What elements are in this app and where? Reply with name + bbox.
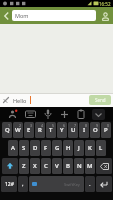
staticText: A [11, 144, 15, 152]
staticText: N [77, 162, 82, 170]
staticText: 9 [96, 123, 99, 128]
staticText: C [44, 162, 48, 170]
button[interactable]: S [19, 140, 29, 156]
button[interactable]: V [52, 158, 62, 174]
button[interactable]: X [30, 158, 40, 174]
staticText: Hello [13, 97, 27, 104]
button[interactable]: A [8, 140, 18, 156]
staticText: 0 [107, 123, 110, 128]
staticText: 16:52 [99, 1, 111, 7]
button[interactable] [2, 9, 11, 22]
button[interactable]: O [90, 122, 100, 138]
staticText: I [83, 126, 86, 134]
button[interactable]: N [74, 158, 84, 174]
button[interactable] [2, 96, 10, 104]
button[interactable]: G [52, 140, 62, 156]
staticText: 6 [63, 123, 66, 128]
staticText: T [49, 126, 53, 134]
staticText: 8 [85, 123, 88, 128]
button[interactable]: J [74, 140, 84, 156]
staticText: P [104, 126, 108, 134]
button[interactable]: K [85, 140, 95, 156]
staticText: D [33, 144, 38, 152]
staticText: S [22, 144, 26, 152]
button[interactable] [25, 109, 36, 119]
button[interactable]: SwiftKey [29, 176, 84, 192]
button[interactable] [99, 10, 111, 22]
button[interactable]: Mom [12, 10, 96, 21]
staticText: R [38, 126, 42, 134]
button[interactable]: M [85, 158, 95, 174]
staticText: Z [22, 162, 26, 170]
button[interactable]: U [68, 122, 78, 138]
button[interactable]: E [24, 122, 34, 138]
staticText: 1 [8, 123, 11, 128]
button[interactable]: Z [19, 158, 29, 174]
button[interactable]: , [18, 176, 28, 192]
staticText: Mom [15, 12, 29, 19]
button[interactable]: Q [2, 122, 12, 138]
button[interactable]: L [96, 140, 106, 156]
button[interactable] [92, 109, 105, 120]
button[interactable]: 12# [1, 176, 17, 192]
button[interactable]: . [85, 176, 95, 192]
staticText: 3 [30, 123, 33, 128]
staticText: X [33, 162, 37, 170]
button[interactable] [60, 110, 69, 119]
button[interactable]: T [46, 122, 56, 138]
staticText: Send [95, 97, 106, 103]
button[interactable] [44, 109, 52, 120]
button[interactable]: F [41, 140, 51, 156]
staticText: Q [5, 126, 10, 134]
staticText: K [88, 144, 92, 152]
staticText: M [87, 162, 93, 170]
staticText: E [27, 126, 31, 134]
staticText: J [78, 144, 80, 152]
staticText: , [22, 180, 24, 188]
button[interactable]: P [101, 122, 111, 138]
button[interactable]: I [79, 122, 89, 138]
staticText: 12# [5, 181, 14, 188]
staticText: Y [60, 126, 64, 134]
button[interactable] [8, 109, 18, 119]
button[interactable]: C [41, 158, 51, 174]
button[interactable]: D [30, 140, 40, 156]
button[interactable]: Send [89, 95, 111, 105]
button[interactable]: B [63, 158, 73, 174]
staticText: SwiftKey [64, 182, 80, 187]
staticText: B [66, 162, 70, 170]
staticText: . [89, 180, 91, 188]
staticText: 7 [74, 123, 77, 128]
button[interactable]: Y [57, 122, 67, 138]
staticText: U [71, 126, 76, 134]
staticText: 2 [19, 123, 22, 128]
staticText: V [55, 162, 59, 170]
button[interactable]: R [35, 122, 45, 138]
staticText: F [44, 144, 48, 152]
staticText: G [55, 144, 60, 152]
staticText: L [99, 144, 103, 152]
button[interactable] [77, 109, 85, 119]
staticText: H [66, 144, 71, 152]
staticText: W [15, 126, 21, 134]
button[interactable] [2, 158, 18, 174]
button[interactable] [96, 176, 112, 192]
button[interactable]: H [63, 140, 73, 156]
button[interactable]: W [13, 122, 23, 138]
staticText: 5 [52, 123, 55, 128]
staticText: 4 [41, 123, 44, 128]
staticText: O [93, 126, 98, 134]
button[interactable] [96, 158, 112, 174]
